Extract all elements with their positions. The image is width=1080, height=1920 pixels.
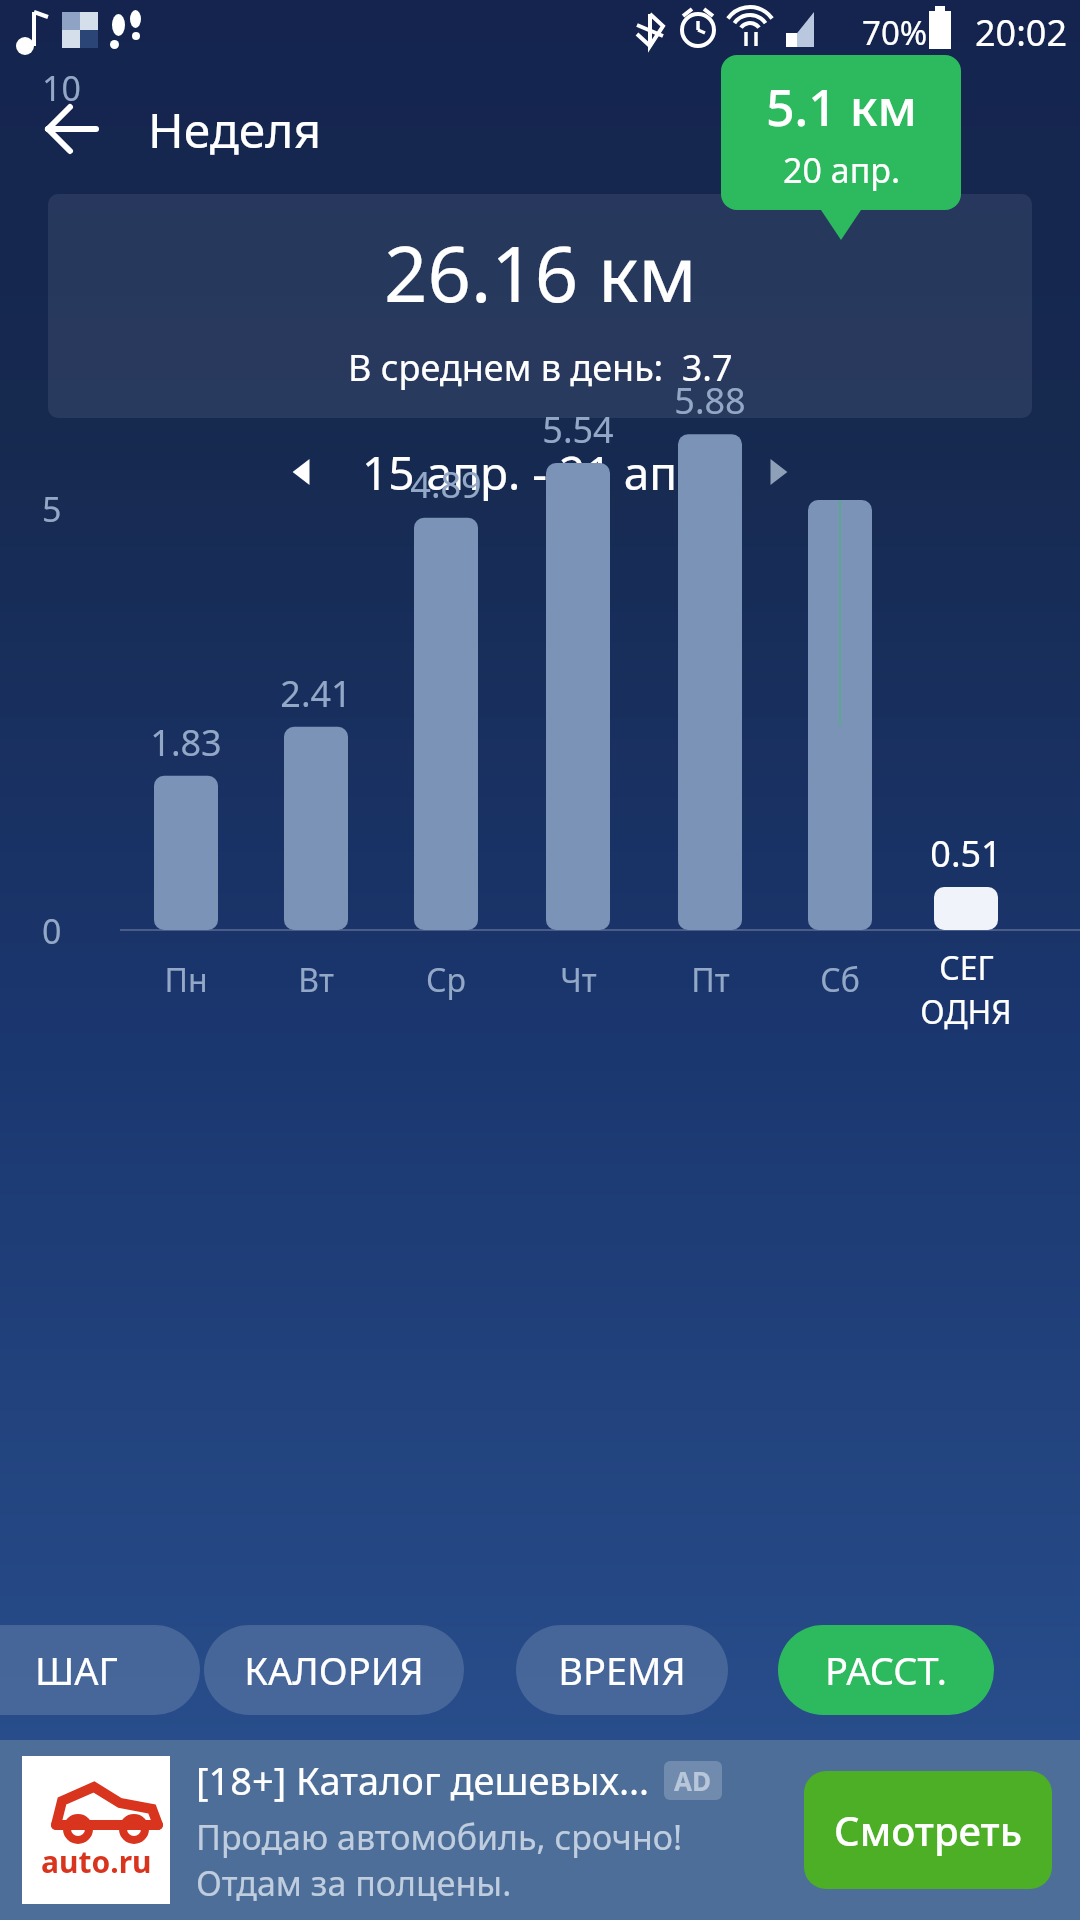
- button[interactable]: Previous week: [268, 437, 338, 507]
- staticText: 0: [42, 908, 62, 954]
- staticText: Смотреть: [834, 1803, 1023, 1857]
- staticText: 0.51: [930, 829, 1002, 878]
- staticText: [18+] Каталог дешевых…: [196, 1754, 650, 1806]
- button[interactable]: 26.16 км: [48, 194, 1032, 418]
- staticText: 15 апр. - 21 апр.: [362, 441, 718, 504]
- button[interactable]: РАССТ.: [778, 1625, 994, 1715]
- staticText: В среднем в день: 3.7: [348, 343, 733, 392]
- staticText: 5.1 км: [766, 73, 917, 141]
- button[interactable]: 5.1 км: [721, 55, 961, 210]
- staticText: Вт: [298, 958, 334, 1002]
- button[interactable]: Back: [34, 93, 106, 165]
- button[interactable]: КАЛОРИЯ: [204, 1625, 464, 1715]
- button[interactable]: ШАГ: [0, 1625, 200, 1715]
- staticText: 5: [42, 486, 62, 532]
- staticText: Чт: [560, 958, 597, 1002]
- staticText: 4.89: [410, 460, 482, 509]
- staticText: 20:02: [975, 8, 1068, 57]
- staticText: 2.41: [280, 669, 352, 718]
- staticText: Пн: [164, 958, 208, 1002]
- staticText: ШАГ: [35, 1644, 118, 1696]
- staticText: auto.ru: [41, 1841, 152, 1882]
- button[interactable]: Смотреть: [804, 1771, 1052, 1889]
- button[interactable]: auto.ru: [0, 1740, 1080, 1920]
- staticText: Пт: [691, 958, 730, 1002]
- staticText: СЕГ: [939, 946, 994, 990]
- button[interactable]: Next week: [742, 437, 812, 507]
- staticText: 5.54: [542, 405, 614, 454]
- staticText: Неделя: [148, 97, 322, 162]
- staticText: ВРЕМЯ: [558, 1644, 686, 1696]
- staticText: Ср: [426, 958, 466, 1002]
- staticText: 20 апр.: [783, 147, 901, 193]
- staticText: ОДНЯ: [920, 990, 1012, 1034]
- staticText: РАССТ.: [825, 1644, 947, 1696]
- button[interactable]: ВРЕМЯ: [516, 1625, 728, 1715]
- staticText: Отдам за полцены.: [196, 1860, 512, 1906]
- staticText: Сб: [820, 958, 860, 1002]
- staticText: КАЛОРИЯ: [244, 1644, 424, 1696]
- staticText: 5.88: [674, 376, 746, 425]
- staticText: 70%: [862, 10, 928, 55]
- staticText: AD: [674, 1763, 712, 1798]
- staticText: 10: [42, 65, 81, 111]
- staticText: 26.16 км: [384, 221, 697, 325]
- staticText: Продаю автомобиль, срочно!: [196, 1814, 683, 1860]
- staticText: 1.83: [150, 718, 222, 767]
